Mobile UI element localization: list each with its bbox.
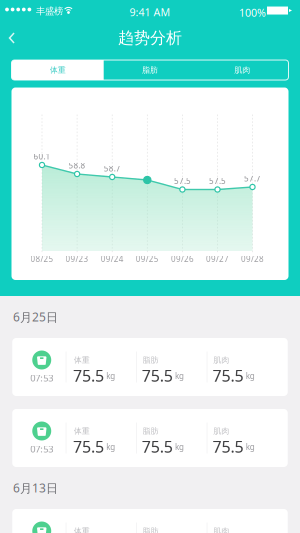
staticText: 57.5	[209, 176, 226, 186]
staticText: 肌肉	[213, 526, 229, 533]
staticText: 脂肪	[142, 65, 158, 75]
staticText: 09/28	[241, 254, 264, 264]
staticText: 6月13日	[13, 480, 58, 496]
staticText: 丰盛榜	[36, 5, 63, 17]
button[interactable]: 07:53	[0, 509, 300, 533]
button[interactable]: 肌肉	[196, 60, 288, 80]
staticText: 09/26	[171, 254, 194, 264]
staticText: 肌肉	[234, 65, 250, 75]
staticText: 58.8	[69, 160, 86, 171]
button[interactable]: 体重	[11, 60, 104, 80]
staticText: 100%	[239, 5, 266, 20]
staticText: 体重	[74, 355, 90, 365]
staticText: 07:53	[30, 443, 53, 455]
staticText: 体重	[74, 526, 90, 533]
button[interactable]: 脂肪	[104, 60, 196, 80]
staticText: 9:41 AM	[129, 5, 170, 19]
staticText: 09/23	[66, 254, 89, 264]
staticText: 75.5	[142, 436, 173, 457]
staticText: 09/24	[101, 254, 124, 264]
staticText: 肌肉	[213, 355, 229, 365]
staticText: 体重	[74, 426, 90, 436]
staticText: 08/25	[30, 254, 53, 264]
staticText: kg	[175, 441, 184, 452]
staticText: 75.5	[142, 365, 173, 386]
staticText: 脂肪	[143, 355, 159, 365]
staticText: 57.5	[174, 176, 191, 186]
staticText: 6月25日	[13, 309, 58, 325]
staticText: 75.5	[73, 365, 104, 386]
staticText: 肌肉	[213, 426, 229, 436]
staticText: kg	[175, 370, 184, 381]
staticText: 09/27	[206, 254, 229, 264]
button[interactable]: 07:53	[0, 338, 300, 396]
button[interactable]: Back	[0, 20, 40, 56]
button[interactable]: 07:53	[0, 409, 300, 467]
staticText: 趋势分析	[118, 28, 182, 48]
staticText: kg	[106, 441, 115, 452]
staticText: 58.7	[104, 163, 121, 174]
staticText: 脂肪	[143, 426, 159, 436]
staticText: kg	[106, 370, 115, 381]
staticText: 75.5	[213, 365, 244, 386]
staticText: kg	[246, 370, 255, 381]
staticText: 75.5	[73, 436, 104, 457]
staticText: 体重	[50, 65, 66, 75]
staticText: 57.7	[244, 173, 261, 184]
staticText: 09/25	[136, 254, 159, 264]
staticText: 75.5	[213, 436, 244, 457]
staticText: 07:53	[30, 372, 53, 384]
staticText: 脂肪	[143, 526, 159, 533]
staticText: 60.1	[33, 151, 50, 162]
staticText: kg	[246, 441, 255, 452]
